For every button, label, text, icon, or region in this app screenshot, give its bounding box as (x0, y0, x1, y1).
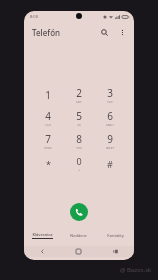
staticText: 4 (45, 109, 51, 123)
button[interactable]: Call (70, 203, 88, 221)
button[interactable]: Klávesnica (24, 229, 60, 241)
button[interactable]: 5 (64, 109, 94, 126)
staticText: 5 (76, 109, 82, 123)
staticText: + (78, 168, 80, 172)
staticText: 1 (45, 88, 51, 102)
staticText: 9 (107, 132, 113, 146)
staticText: PQRS (44, 147, 52, 149)
button[interactable]: 1 (33, 86, 63, 103)
staticText: 0 (76, 155, 82, 167)
staticText: 3 (107, 86, 113, 100)
button[interactable]: 3 (95, 86, 125, 103)
staticText: GHI (45, 124, 51, 126)
staticText: JKL (77, 124, 82, 126)
staticText: Kontakty (107, 233, 124, 238)
button[interactable]: 8 (64, 132, 94, 149)
staticText: 8:00 (30, 14, 38, 19)
staticText: TUV (76, 147, 82, 149)
button[interactable]: Nedávne (60, 229, 97, 241)
staticText: ABC (76, 101, 82, 103)
button[interactable]: Back (24, 246, 60, 257)
staticText: WXYZ (106, 147, 114, 149)
staticText: Klávesnica (32, 232, 53, 237)
staticText: DEF (107, 101, 113, 103)
staticText: Nedávne (70, 233, 87, 238)
button[interactable]: 4 (33, 109, 63, 126)
staticText: # (107, 158, 113, 170)
button[interactable]: * (33, 155, 63, 172)
button[interactable]: 0 (64, 155, 94, 172)
button[interactable]: Recent apps (97, 246, 134, 257)
button[interactable]: 2 (64, 86, 94, 103)
staticText: * (46, 158, 51, 170)
staticText: 2 (76, 86, 82, 100)
staticText: 7 (45, 132, 51, 146)
button[interactable]: 9 (95, 132, 125, 149)
staticText: Telefón (32, 27, 61, 38)
button[interactable]: # (95, 155, 125, 172)
button[interactable]: 7 (33, 132, 63, 149)
button[interactable]: Home (60, 246, 97, 257)
button[interactable]: More options (116, 26, 128, 38)
button[interactable]: Search (98, 26, 110, 38)
staticText: 8 (76, 132, 82, 146)
button[interactable]: 6 (95, 109, 125, 126)
staticText: MNO (106, 124, 114, 126)
staticText: @ Bazos.sk (120, 266, 152, 274)
staticText: 6 (107, 109, 113, 123)
button[interactable]: Kontakty (97, 229, 134, 241)
